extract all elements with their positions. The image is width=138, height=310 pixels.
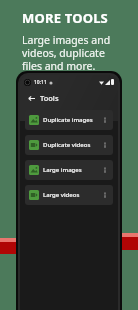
staticText: MORE TOOLS bbox=[22, 9, 108, 27]
button[interactable]: More options for Duplicate videos bbox=[101, 141, 109, 149]
button[interactable]: Back bbox=[25, 92, 37, 104]
staticText: 10:11 bbox=[34, 79, 47, 86]
button[interactable]: More options for Large videos bbox=[101, 191, 109, 199]
button[interactable]: More options for Duplicate images bbox=[101, 116, 109, 124]
staticText: Large images and videos, duplicate files… bbox=[22, 33, 111, 73]
staticText: Duplicate videos bbox=[43, 141, 101, 149]
staticText: Duplicate images bbox=[43, 116, 101, 124]
staticText: Large videos bbox=[43, 191, 101, 199]
button[interactable]: Large videos bbox=[25, 185, 113, 205]
staticText: Large images bbox=[43, 166, 101, 174]
button[interactable]: Large images bbox=[25, 160, 113, 180]
button[interactable]: Duplicate images bbox=[25, 110, 113, 130]
button[interactable]: More options for Large images bbox=[101, 166, 109, 174]
button[interactable]: Duplicate videos bbox=[25, 135, 113, 155]
staticText: Tools bbox=[40, 93, 59, 103]
